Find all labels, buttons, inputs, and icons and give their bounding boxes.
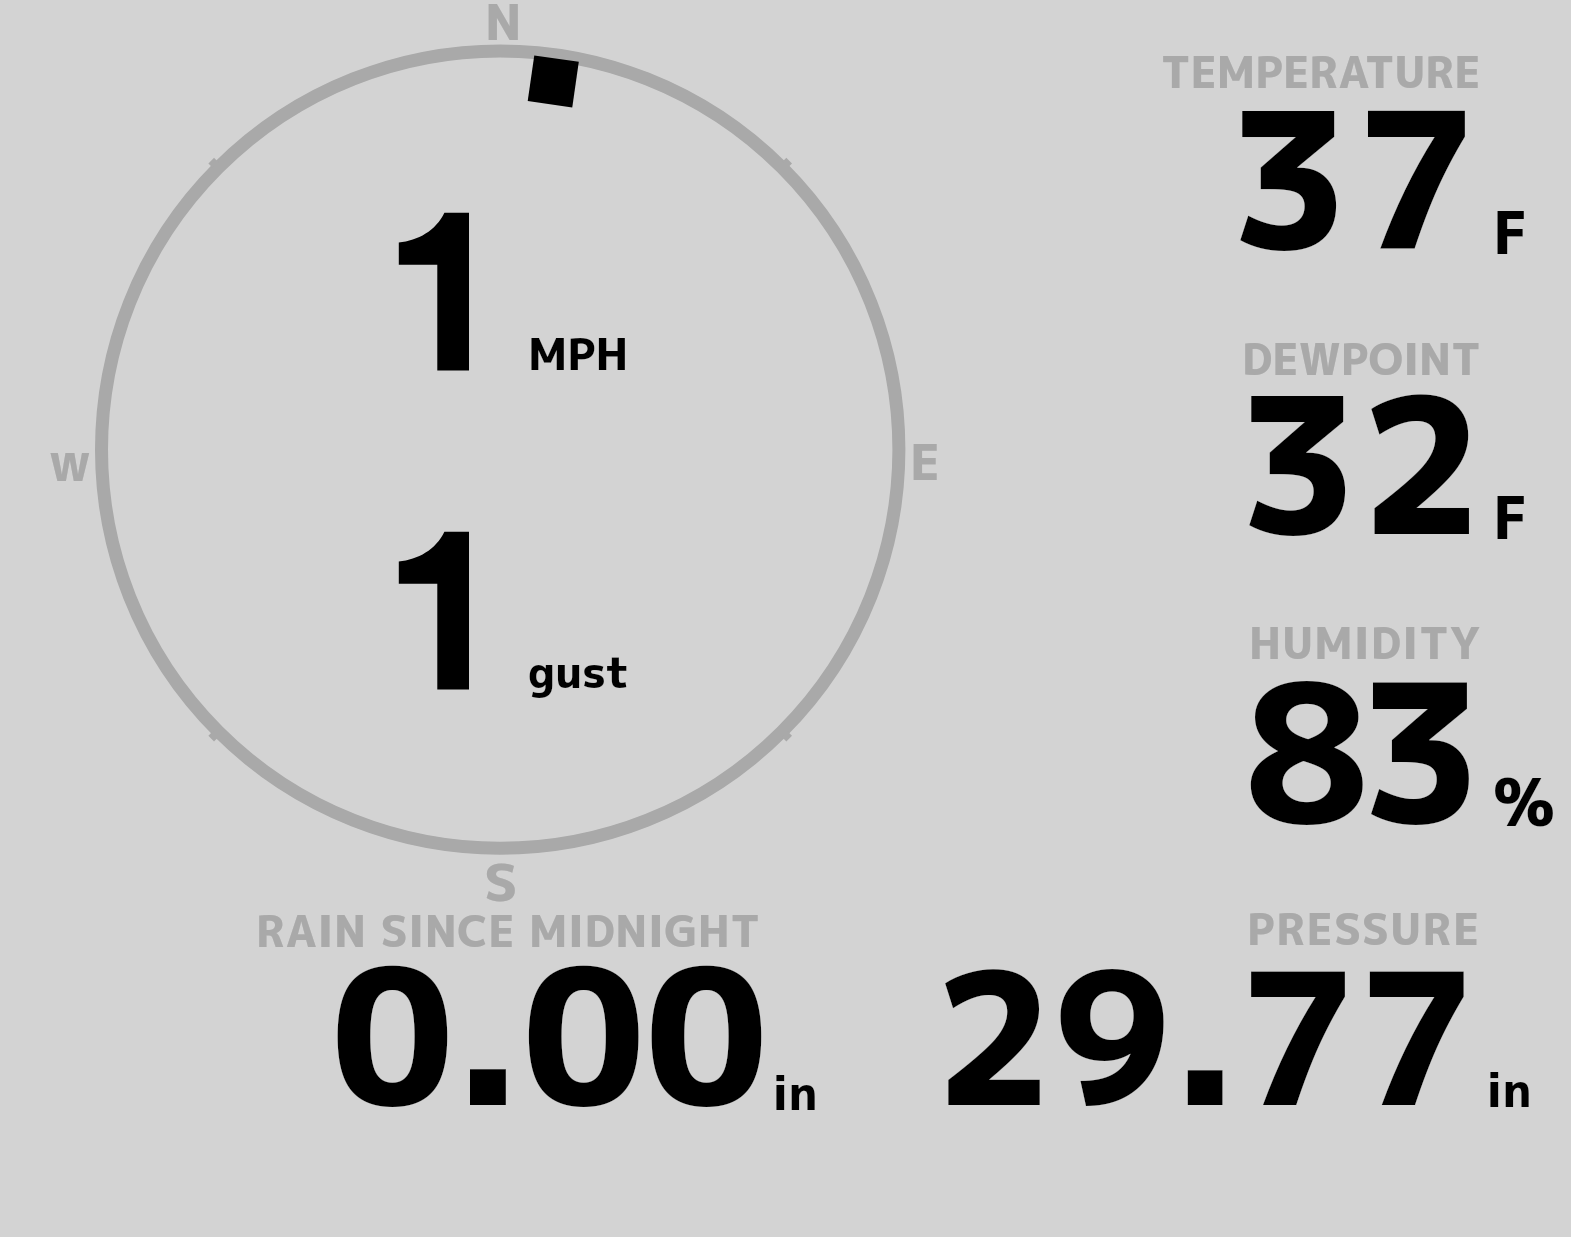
staticText: 32 [1237,331,1483,595]
staticText: 29.77 [934,908,1477,1163]
staticText: E [910,427,940,495]
staticText: MPH [528,323,629,384]
staticText: in [772,1059,818,1125]
staticText: F [1493,192,1528,273]
staticText: N [485,0,522,55]
staticText: % [1493,755,1555,847]
staticText: DEWPOINT [1242,329,1481,389]
button[interactable]: Rain since midnight 0.00 inches [250,900,820,1118]
staticText: in [1486,1056,1532,1122]
staticText: 0.00 [331,902,768,1166]
staticText: S [484,846,518,917]
button[interactable]: Temperature 37 degrees Fahrenheit [1150,40,1550,265]
staticText: F [1493,477,1528,558]
staticText: 83 [1244,616,1473,885]
staticText: 37 [1228,46,1482,310]
staticText: TEMPERATURE [1161,42,1481,102]
button[interactable]: Wind gust 1 miles per hour [380,520,640,705]
staticText: PRESSURE [1247,899,1481,959]
button[interactable]: Wind speed 1 miles per hour [380,200,640,385]
staticText: W [49,441,92,493]
button[interactable]: Humidity 83 percent [1150,610,1565,835]
button[interactable]: Wind direction compass [60,10,940,890]
button[interactable]: Pressure 29.77 inches [930,896,1540,1116]
staticText: gust [528,641,630,702]
staticText: HUMIDITY [1249,613,1482,673]
staticText: RAIN SINCE MIDNIGHT [256,901,761,961]
button[interactable]: Dewpoint 32 degrees Fahrenheit [1150,325,1550,550]
